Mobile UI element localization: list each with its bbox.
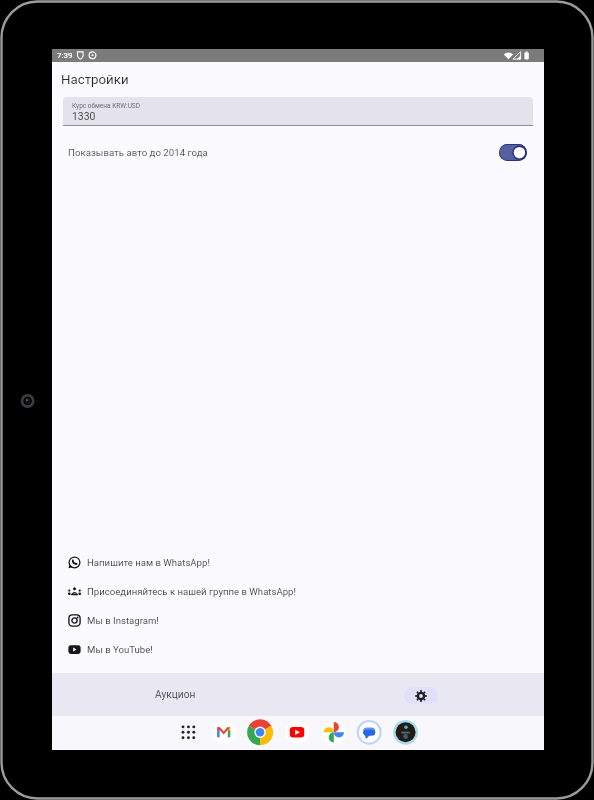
button[interactable]: Курс обмена KRW:USD (63, 97, 533, 126)
button[interactable]: Напишите нам в WhatsApp! (68, 555, 210, 569)
staticText: Курс обмена KRW:USD (72, 102, 140, 110)
button[interactable]: Аукцион (52, 673, 298, 717)
staticText: Настройки (61, 72, 129, 88)
staticText: Аукцион (155, 689, 196, 701)
button[interactable]: Мы в Instagram! (68, 613, 159, 627)
staticText: Напишите нам в WhatsApp! (87, 557, 210, 568)
button[interactable]: Присоединяйтесь к нашей группе в WhatsAp… (68, 584, 296, 598)
button[interactable] (298, 673, 544, 717)
staticText: Мы в YouTube! (87, 644, 153, 655)
staticText: Мы в Instagram! (87, 615, 159, 626)
button[interactable] (499, 144, 527, 161)
staticText: 7:39 (57, 51, 73, 60)
button[interactable]: Мы в YouTube! (68, 642, 153, 656)
staticText: Присоединяйтесь к нашей группе в WhatsAp… (87, 586, 296, 597)
staticText: Показывать авто до 2014 года (68, 147, 208, 158)
staticText: 1330 (72, 110, 96, 122)
